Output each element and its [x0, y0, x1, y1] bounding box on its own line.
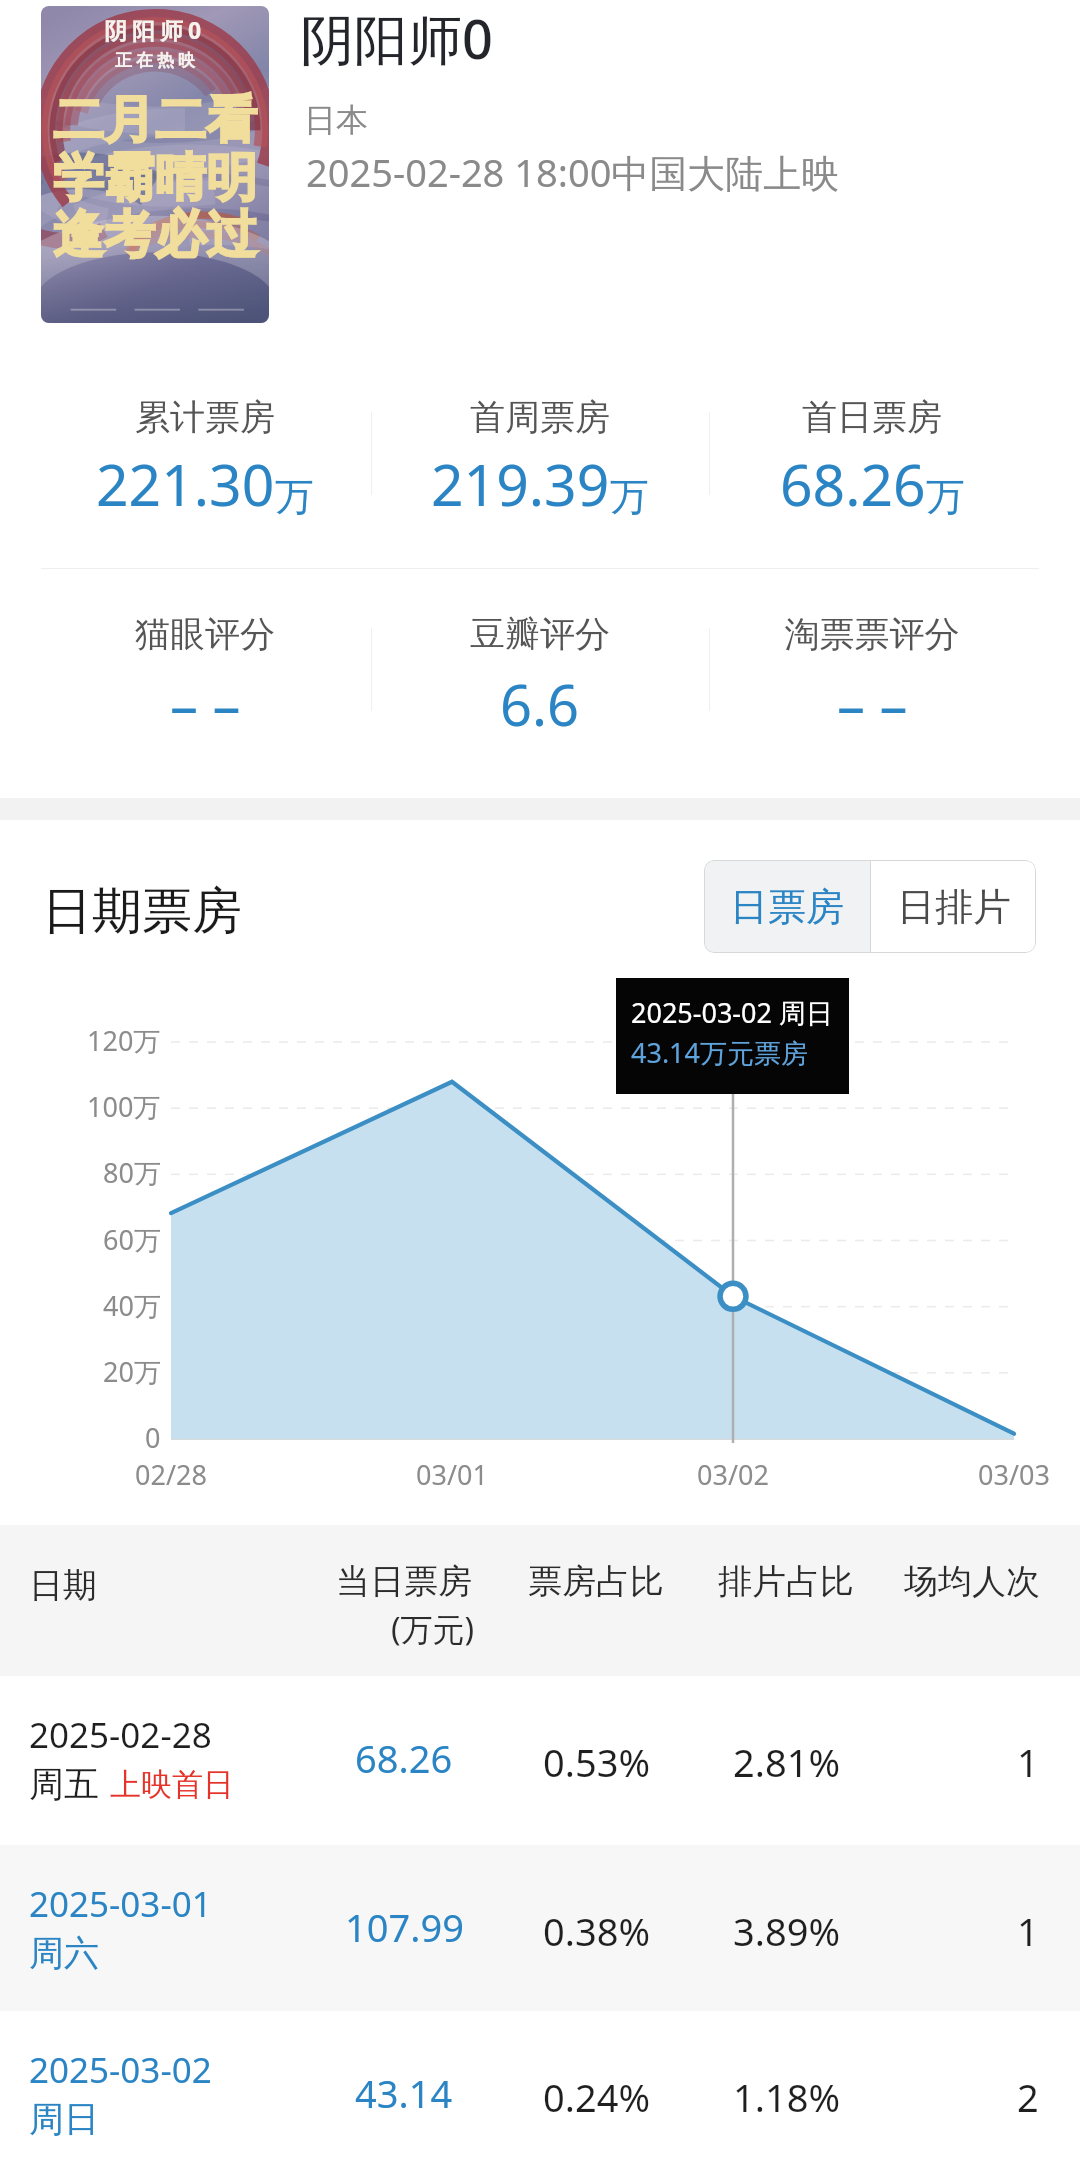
staticText: 上映首日: [110, 1765, 234, 1804]
staticText: (万元): [391, 1607, 475, 1651]
staticText: 2: [1017, 2071, 1039, 2123]
staticText: 0.38%: [543, 1905, 650, 1957]
button[interactable]: 日票房: [704, 860, 870, 953]
staticText: – –: [170, 666, 241, 742]
staticText: – –: [837, 666, 908, 742]
staticText: 2025-03-02 周日: [631, 994, 833, 1031]
button[interactable]: 电影海报 阴阳师0: [41, 6, 269, 323]
staticText: 阴阳师0: [104, 14, 207, 45]
staticText: 43.14万元票房: [631, 1034, 809, 1071]
staticText: 2.81%: [733, 1736, 840, 1788]
staticText: 6.6: [500, 666, 580, 742]
staticText: 0.53%: [543, 1736, 650, 1788]
staticText: 0: [145, 1419, 161, 1456]
staticText: 3.89%: [733, 1905, 840, 1957]
staticText: 周六: [29, 1931, 99, 1975]
staticText: 2025-03-01: [29, 1880, 212, 1928]
staticText: 03/02: [697, 1456, 769, 1493]
staticText: 1.18%: [733, 2071, 840, 2123]
staticText: 日期: [29, 1564, 97, 1607]
staticText: 68.26: [355, 1732, 453, 1784]
staticText: 淘票票评分: [722, 612, 1022, 656]
staticText: 排片占比: [718, 1560, 854, 1603]
staticText: 万: [610, 472, 649, 521]
staticText: 2025-03-02: [29, 2046, 212, 2094]
staticText: 1: [1017, 1736, 1039, 1788]
button[interactable]: 豆瓣评分: [390, 594, 690, 784]
staticText: 日排片: [897, 883, 1011, 931]
button[interactable]: 淘票票评分: [722, 594, 1022, 784]
staticText: 2025-02-28: [29, 1711, 212, 1759]
staticText: 43.14: [355, 2067, 453, 2119]
button[interactable]: 2025-02-28: [0, 1676, 1080, 1842]
staticText: 二月二看 学霸晴明 逢考必过: [53, 88, 257, 267]
staticText: 219.39: [431, 445, 610, 523]
staticText: 20万: [103, 1353, 161, 1390]
staticText: 107.99: [345, 1901, 464, 1953]
staticText: 场均人次: [904, 1560, 1040, 1603]
staticText: 80万: [103, 1154, 161, 1191]
staticText: 首周票房: [390, 395, 690, 439]
staticText: 日本: [304, 100, 368, 140]
staticText: 2025-02-28 18:00中国大陆上映: [306, 146, 840, 198]
staticText: 03/03: [978, 1456, 1050, 1493]
staticText: 万: [926, 472, 965, 521]
button[interactable]: 猫眼评分: [55, 594, 355, 784]
staticText: 豆瓣评分: [390, 612, 690, 656]
staticText: 首日票房: [722, 395, 1022, 439]
button[interactable]: 首周票房: [390, 377, 690, 567]
staticText: 阴阳师0: [300, 1, 493, 75]
button[interactable]: 2025-03-01: [0, 1845, 1080, 2011]
staticText: 周五: [29, 1762, 99, 1806]
staticText: 票房占比: [528, 1560, 664, 1603]
staticText: 当日票房: [336, 1560, 472, 1603]
staticText: 周日: [29, 2097, 99, 2141]
staticText: 221.30: [96, 445, 275, 523]
staticText: 1: [1017, 1905, 1039, 1957]
staticText: 100万: [87, 1088, 161, 1125]
button[interactable]: 首日票房: [722, 377, 1022, 567]
staticText: 120万: [87, 1022, 161, 1059]
staticText: 0.24%: [543, 2071, 650, 2123]
staticText: 03/01: [416, 1456, 488, 1493]
staticText: 40万: [103, 1287, 161, 1324]
staticText: 日票房: [730, 883, 844, 931]
button[interactable]: 累计票房: [55, 377, 355, 567]
staticText: 猫眼评分: [55, 612, 355, 656]
button[interactable]: 2025-03-02: [0, 2011, 1080, 2174]
staticText: 累计票房: [55, 395, 355, 439]
staticText: 日期票房: [42, 880, 242, 943]
staticText: 正在热映: [113, 50, 197, 71]
staticText: 万: [275, 472, 314, 521]
button[interactable]: 日排片: [871, 860, 1036, 953]
staticText: 68.26: [780, 445, 926, 523]
staticText: 60万: [103, 1221, 161, 1258]
staticText: 02/28: [135, 1456, 207, 1493]
